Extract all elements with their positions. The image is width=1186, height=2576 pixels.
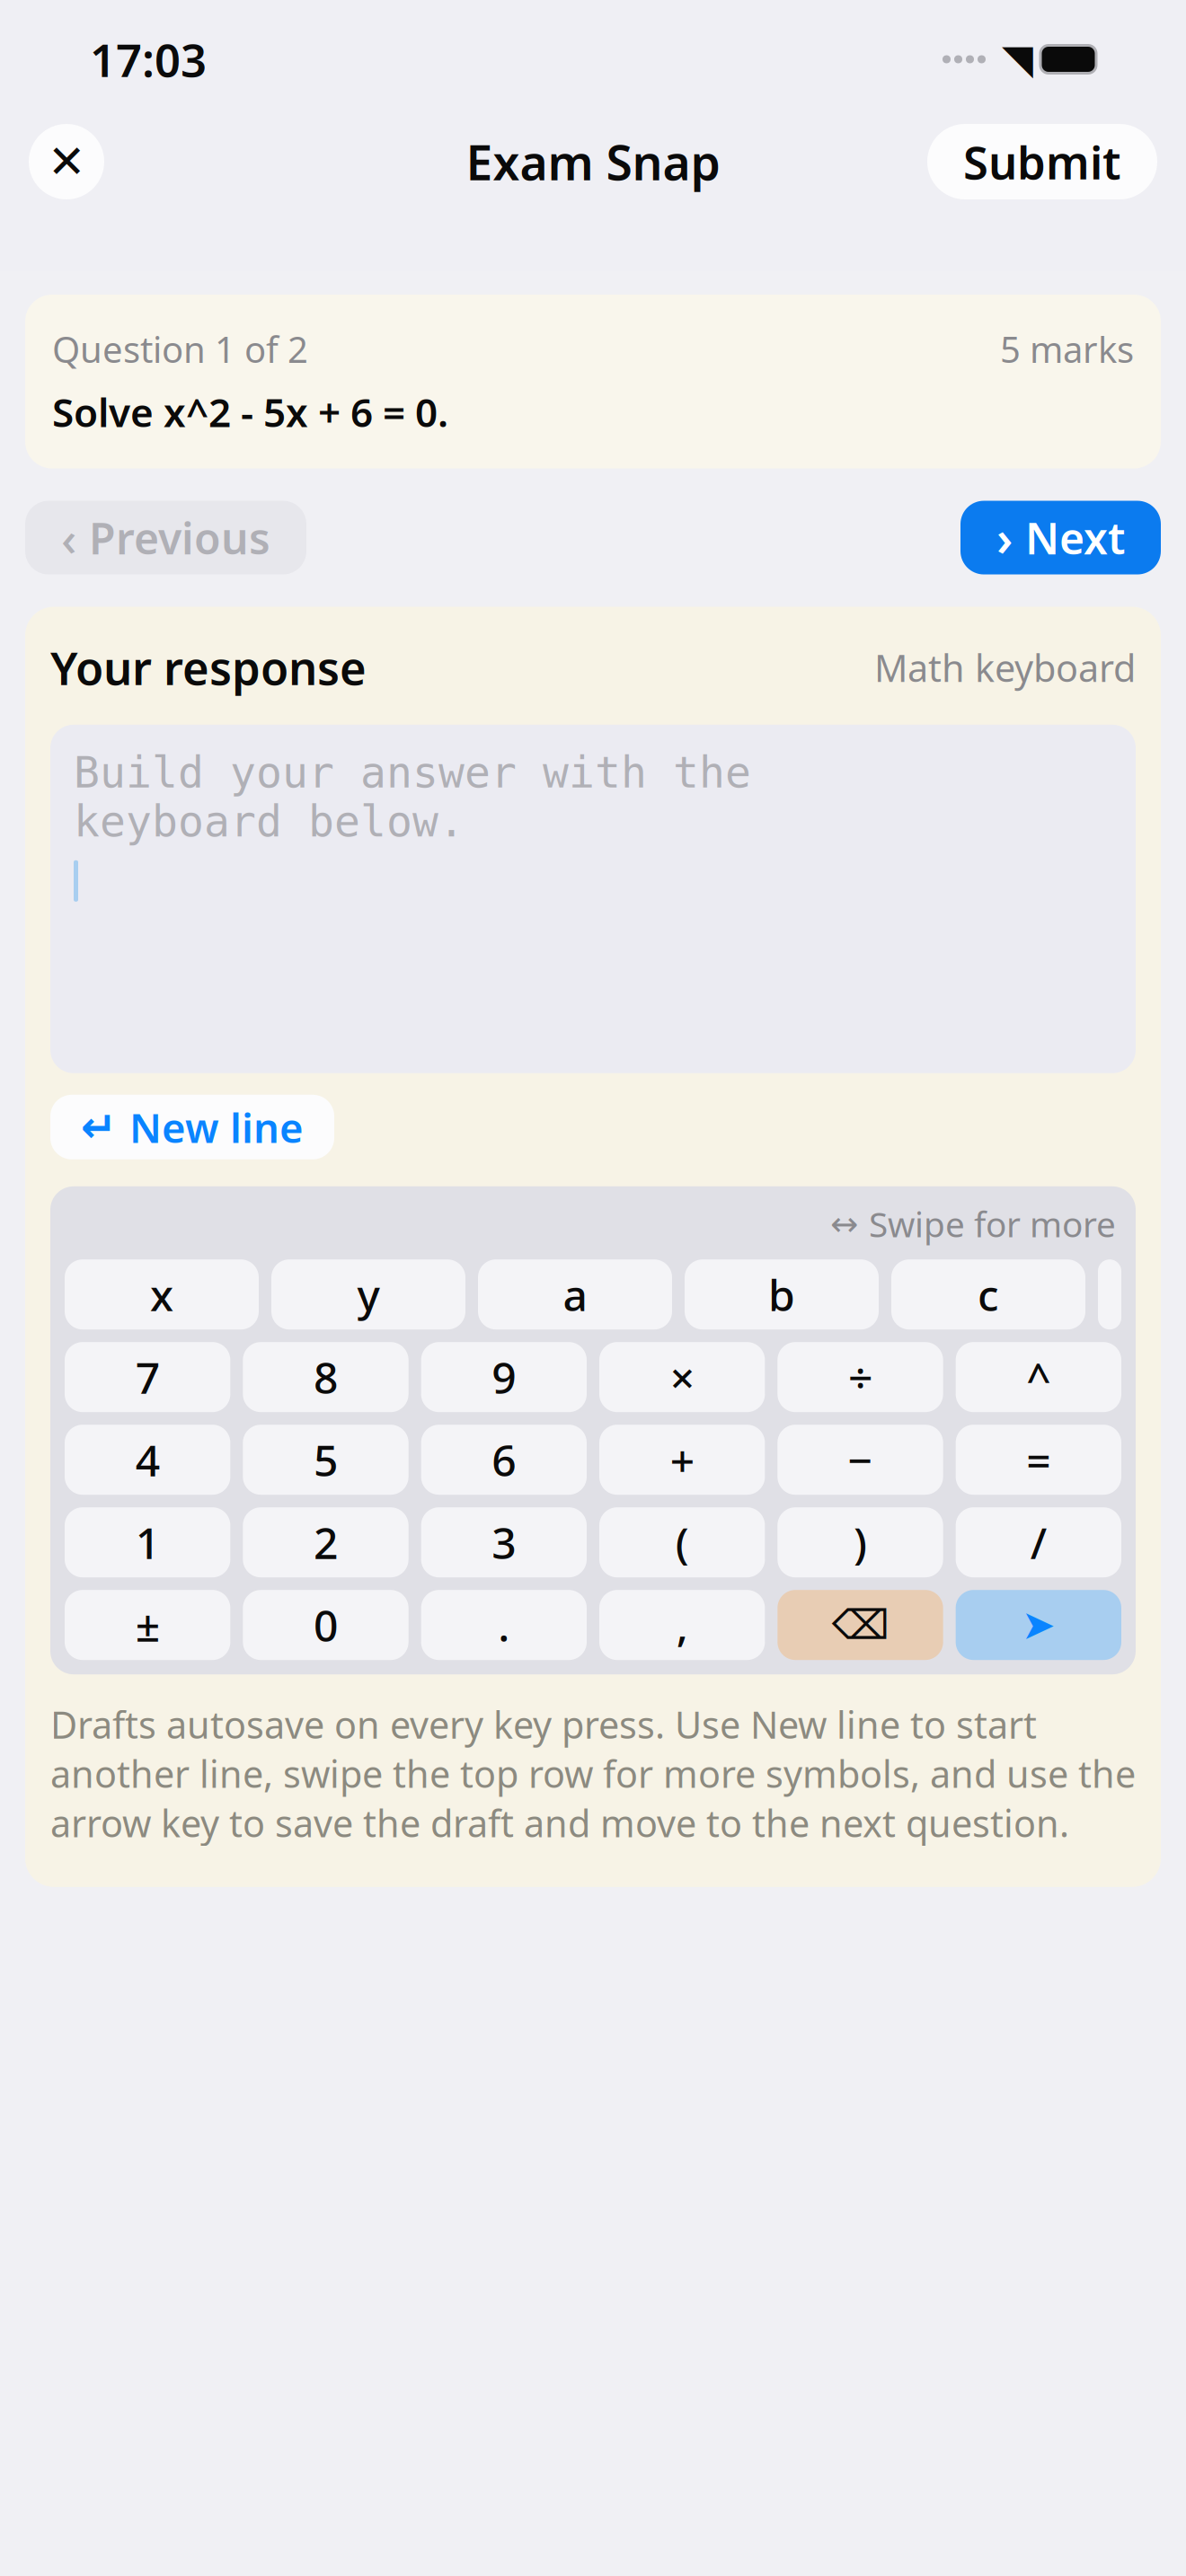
button[interactable]: +	[599, 1425, 765, 1495]
staticText: Question 1 of 2	[52, 325, 308, 373]
staticText: ↔	[830, 1205, 858, 1243]
staticText: Drafts autosave on every key press. Use …	[50, 1700, 1136, 1847]
staticText: c	[978, 1266, 999, 1323]
staticText: 8	[314, 1348, 338, 1406]
button[interactable]: 4	[65, 1425, 230, 1495]
staticText: 9	[492, 1348, 516, 1406]
staticText: y	[357, 1266, 380, 1323]
staticText: b	[768, 1266, 795, 1323]
staticText: ‹	[61, 506, 76, 569]
staticText: ›	[996, 506, 1013, 569]
staticText: Exam Snap	[466, 130, 720, 193]
button[interactable]: ›	[960, 501, 1161, 574]
button[interactable]: c	[891, 1259, 1085, 1329]
button[interactable]: ➤	[956, 1590, 1121, 1660]
button[interactable]: (	[599, 1507, 765, 1577]
button[interactable]: )	[777, 1507, 943, 1577]
staticText: 2	[314, 1514, 338, 1571]
staticText: 4	[135, 1431, 160, 1488]
staticText: ⌫	[832, 1602, 889, 1648]
button[interactable]: 0	[243, 1590, 408, 1660]
staticText: ^	[1026, 1348, 1051, 1406]
staticText: =	[1026, 1431, 1051, 1488]
button[interactable]: 7	[65, 1342, 230, 1412]
staticText: Next	[1025, 509, 1125, 566]
staticText: ↵	[81, 1103, 117, 1152]
button[interactable]: Submit	[927, 124, 1157, 199]
staticText: New line	[129, 1100, 304, 1154]
staticText: 6	[492, 1431, 516, 1488]
staticText: 5 marks	[1000, 325, 1134, 373]
staticText: ◥	[1002, 36, 1033, 82]
button[interactable]: ‹	[25, 501, 306, 574]
staticText: )	[854, 1514, 867, 1571]
staticText: 0	[314, 1596, 338, 1654]
staticText: a	[563, 1266, 587, 1323]
staticText: Math keyboard	[874, 643, 1136, 692]
staticText: 5	[314, 1431, 338, 1488]
staticText: 1	[135, 1514, 160, 1571]
staticText: Your response	[50, 637, 367, 698]
button[interactable]: =	[956, 1425, 1121, 1495]
staticText: (	[675, 1514, 689, 1571]
button[interactable]: 2	[243, 1507, 408, 1577]
button[interactable]: ↵	[50, 1095, 334, 1159]
staticText: keyboard below.	[74, 797, 465, 846]
staticText: ✕	[48, 136, 85, 187]
staticText: ±	[135, 1596, 160, 1654]
button[interactable]: Close	[29, 124, 104, 199]
button[interactable]: ÷	[777, 1342, 943, 1412]
staticText: Submit	[963, 131, 1121, 192]
button[interactable]: 5	[243, 1425, 408, 1495]
staticText: x	[150, 1266, 173, 1323]
button[interactable]: /	[956, 1507, 1121, 1577]
button[interactable]: .	[421, 1590, 587, 1660]
staticText: Build your answer with the	[74, 748, 751, 797]
button[interactable]: −	[777, 1425, 943, 1495]
button[interactable]: 1	[65, 1507, 230, 1577]
button[interactable]: x	[65, 1259, 259, 1329]
staticText: Previous	[89, 509, 270, 566]
staticText: ➤	[1021, 1602, 1056, 1648]
button[interactable]: 3	[421, 1507, 587, 1577]
button[interactable]: ,	[599, 1590, 765, 1660]
button[interactable]: 9	[421, 1342, 587, 1412]
button[interactable]: ±	[65, 1590, 230, 1660]
staticText: −	[848, 1431, 873, 1488]
staticText: +	[670, 1431, 694, 1488]
staticText: 7	[135, 1348, 160, 1406]
staticText: 17:03	[90, 29, 207, 90]
staticText: Swipe for more	[869, 1201, 1116, 1247]
staticText: .	[498, 1596, 510, 1654]
staticText: 3	[492, 1514, 516, 1571]
staticText: ×	[670, 1348, 694, 1406]
button[interactable]: 6	[421, 1425, 587, 1495]
staticText: ,	[676, 1596, 688, 1654]
button[interactable]: ⌫	[777, 1590, 943, 1660]
button[interactable]: a	[478, 1259, 672, 1329]
button[interactable]: 8	[243, 1342, 408, 1412]
button[interactable]: ^	[956, 1342, 1121, 1412]
staticText: ÷	[848, 1348, 872, 1406]
button[interactable]: y	[271, 1259, 465, 1329]
button[interactable]: b	[685, 1259, 879, 1329]
button[interactable]: ×	[599, 1342, 765, 1412]
staticText: /	[1030, 1514, 1047, 1571]
staticText: Solve x^2 - 5x + 6 = 0.	[52, 385, 448, 438]
